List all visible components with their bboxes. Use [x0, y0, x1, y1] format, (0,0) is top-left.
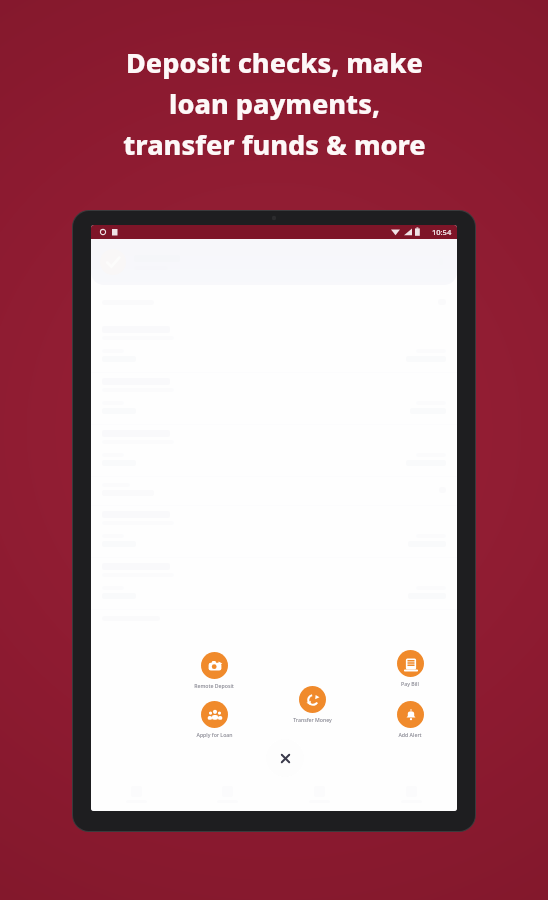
staticText: Remote Deposit: [194, 682, 234, 689]
button[interactable]: Remote Deposit: [178, 652, 250, 689]
staticText: loan payments,: [169, 85, 380, 122]
staticText: Apply for Loan: [196, 731, 233, 738]
staticText: transfer funds & more: [123, 126, 426, 163]
button[interactable]: Add Alert: [374, 701, 446, 738]
button[interactable]: Tab 4: [365, 777, 457, 811]
button[interactable]: Pay Bill: [374, 650, 446, 687]
staticText: Transfer Money: [293, 716, 332, 723]
staticText: Pay Bill: [401, 680, 419, 687]
staticText: Deposit checks, make: [126, 44, 423, 81]
button[interactable]: Transfer Money: [276, 686, 348, 723]
button[interactable]: Tab 1: [91, 777, 182, 811]
staticText: 10:54: [432, 227, 452, 237]
button[interactable]: Apply for Loan: [178, 701, 250, 738]
staticText: Add Alert: [398, 731, 422, 738]
button[interactable]: Close menu: [266, 739, 304, 777]
